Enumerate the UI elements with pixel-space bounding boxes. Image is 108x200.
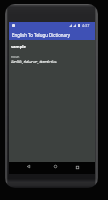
button[interactable]: English To Telugu Dictionary [9,29,95,40]
staticText: 4:37 [82,23,90,28]
button[interactable]: Back [24,162,33,170]
staticText: English To Telugu Dictionary [12,32,71,38]
staticText: noun [11,54,20,59]
button[interactable]: Home [51,162,60,170]
button[interactable]: Recent apps [73,163,82,171]
staticText: sample [11,44,27,50]
staticText: మాదిరి, నమూనా, ఉదాహరణ [11,59,57,65]
